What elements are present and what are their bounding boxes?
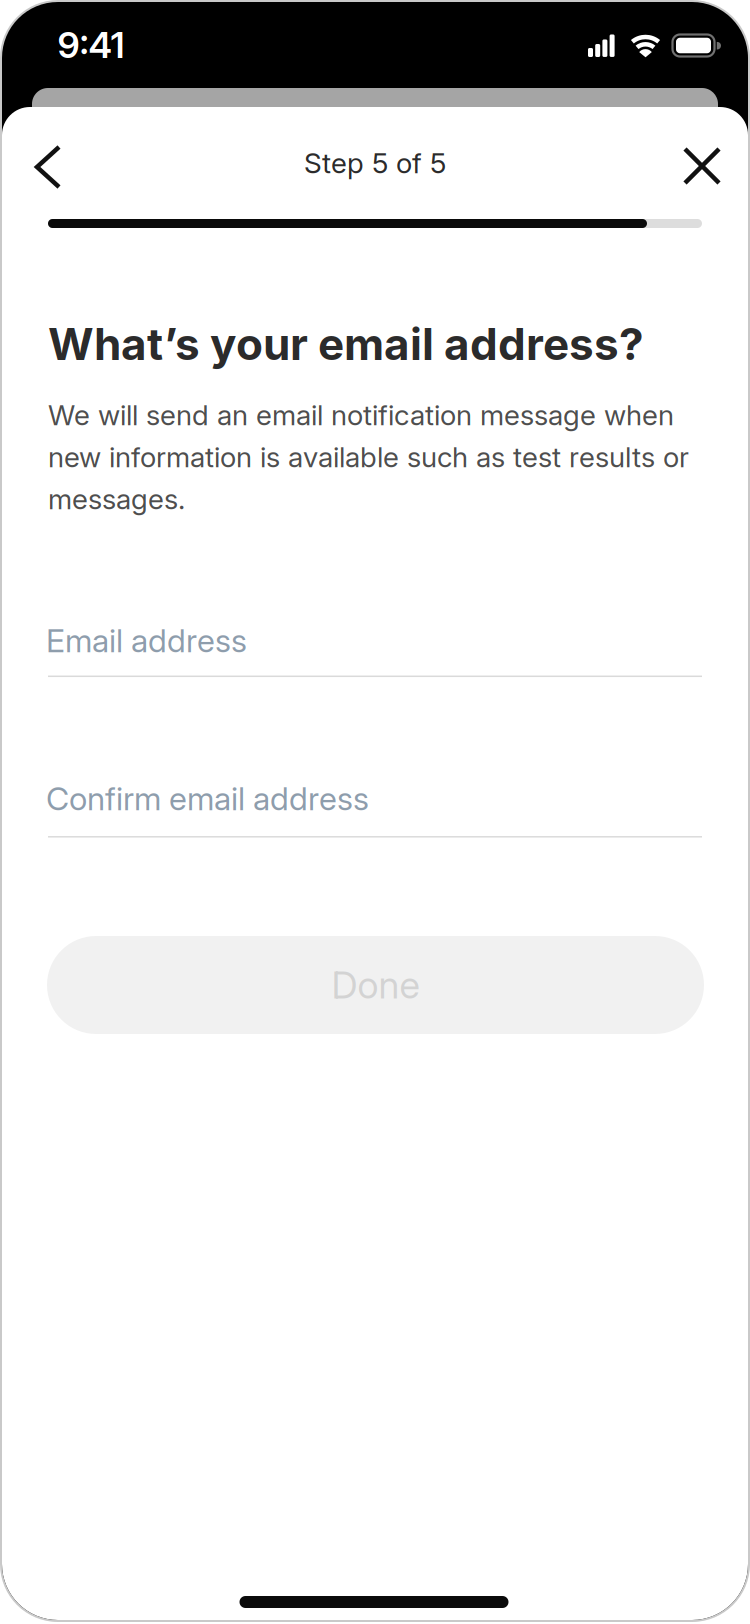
button[interactable]: Close	[671, 135, 733, 197]
staticText: What’s your email address?	[48, 318, 644, 370]
button[interactable]: Done	[47, 936, 704, 1034]
button[interactable]: Confirm email address	[46, 780, 702, 844]
staticText: 9:41	[57, 24, 124, 66]
staticText: We will send an email notification messa…	[48, 398, 674, 431]
staticText: messages.	[48, 482, 185, 515]
button[interactable]: Back	[23, 133, 73, 201]
staticText: Email address	[46, 622, 247, 659]
staticText: new information is available such as tes…	[48, 440, 689, 473]
staticText: Confirm email address	[46, 780, 369, 817]
button[interactable]: Email address	[46, 622, 702, 686]
staticText: Done	[331, 963, 419, 1007]
staticText: Step 5 of 5	[304, 146, 446, 179]
